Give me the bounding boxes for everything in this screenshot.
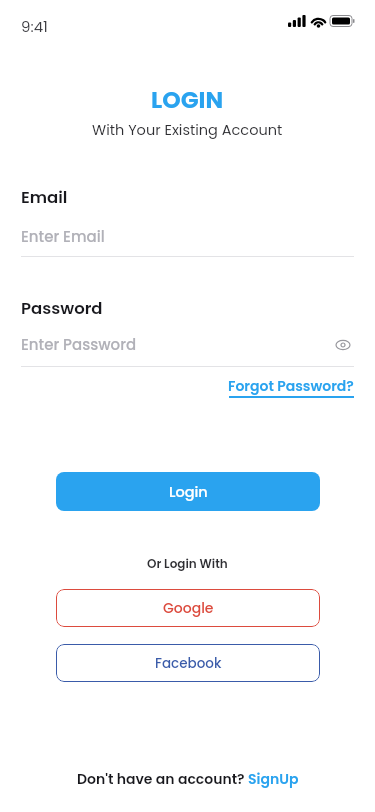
staticText: Forgot Password? xyxy=(228,376,354,396)
staticText: LOGIN xyxy=(151,83,224,116)
staticText: Enter Password xyxy=(21,334,137,355)
staticText: SignUp xyxy=(248,769,299,789)
staticText: Google xyxy=(163,598,214,618)
staticText: Password xyxy=(21,297,103,320)
staticText: Or Login With xyxy=(147,555,228,572)
staticText: With Your Existing Account xyxy=(92,120,283,140)
button[interactable]: Facebook xyxy=(56,644,320,682)
button[interactable]: Enter Password xyxy=(21,327,354,367)
button[interactable]: Google xyxy=(56,589,320,627)
button[interactable]: Login xyxy=(56,472,320,511)
button[interactable]: SignUp xyxy=(248,769,299,789)
staticText: Facebook xyxy=(155,654,222,673)
staticText: Email xyxy=(21,186,68,209)
staticText: 9:41 xyxy=(21,16,48,37)
button[interactable]: Enter Email xyxy=(21,218,354,257)
button[interactable]: Forgot Password? xyxy=(228,376,354,398)
staticText: Don't have an account? xyxy=(77,769,248,789)
staticText: Enter Email xyxy=(21,226,105,247)
staticText: Login xyxy=(169,482,208,502)
button[interactable] xyxy=(334,338,352,352)
